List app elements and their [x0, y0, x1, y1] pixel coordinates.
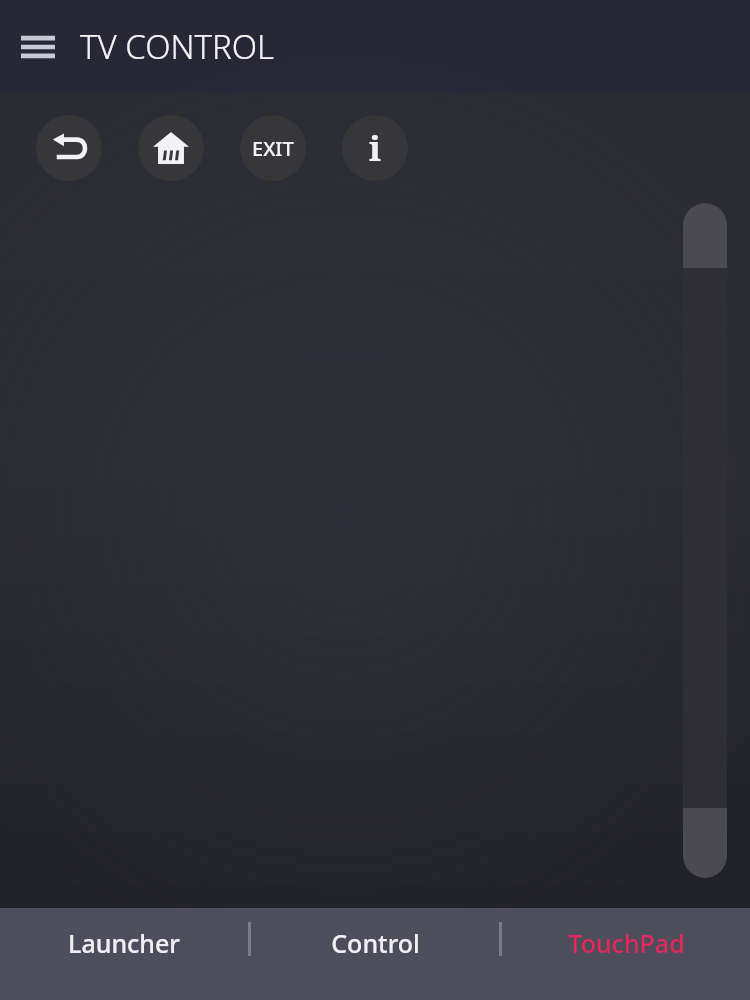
- button[interactable]: Control: [251, 908, 499, 1000]
- button[interactable]: Home: [138, 115, 204, 181]
- button[interactable]: Exit: [240, 115, 306, 181]
- button[interactable]: Menu: [10, 19, 66, 75]
- button[interactable]: Launcher: [0, 908, 248, 1000]
- staticText: Control: [331, 926, 420, 960]
- button[interactable]: Back: [36, 115, 102, 181]
- button[interactable]: TouchPad: [502, 908, 750, 1000]
- button[interactable]: Scroll: [683, 203, 727, 878]
- staticText: EXIT: [252, 135, 294, 162]
- staticText: TV CONTROL: [80, 24, 275, 69]
- button[interactable]: Info: [342, 115, 408, 181]
- staticText: TouchPad: [568, 926, 685, 960]
- staticText: i: [369, 125, 381, 171]
- staticText: Launcher: [68, 926, 180, 960]
